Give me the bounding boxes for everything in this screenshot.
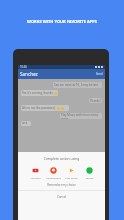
staticText: Remember my choice xyxy=(18,183,105,187)
staticText: Complete action using xyxy=(18,156,105,161)
staticText: Spotify xyxy=(85,176,94,179)
staticText: YouTube xyxy=(30,176,41,179)
button[interactable]: Ah no not like password, xyxy=(21,105,69,111)
staticText: WORKS WITH YOUR FAVORITE APPS xyxy=(27,19,97,24)
staticText: Send xyxy=(96,72,103,76)
button[interactable]: Cancel xyxy=(18,191,105,203)
staticText: Ah no not like password, xyxy=(22,106,56,110)
staticText: Can we meet at 10, I may be late xyxy=(54,83,99,87)
button[interactable]: and so xyxy=(21,121,31,126)
staticText: Play Music with more emoji more xyxy=(61,113,101,119)
staticText: and so xyxy=(22,121,30,126)
button[interactable]: Play Music xyxy=(62,167,80,179)
staticText: 10:36 xyxy=(20,65,27,69)
staticText: SoundCloud xyxy=(46,176,61,179)
button[interactable]: Yes it's coming, thanks xyxy=(21,90,58,96)
button[interactable]: Spotify xyxy=(80,167,98,179)
staticText: Yes it's coming, thanks xyxy=(22,91,53,95)
staticText: Play Music xyxy=(65,176,78,179)
staticText: Thanks! xyxy=(90,99,101,103)
button[interactable]: SoundCloud xyxy=(44,167,62,179)
button[interactable]: YouTube xyxy=(26,167,44,179)
staticText: Sanchez xyxy=(20,71,38,77)
button[interactable]: Thanks! xyxy=(89,98,102,103)
button[interactable]: Play Music with more emoji more xyxy=(60,113,102,119)
button[interactable]: Can we meet at 10, I may be late xyxy=(53,82,102,88)
staticText: Cancel xyxy=(57,195,67,199)
